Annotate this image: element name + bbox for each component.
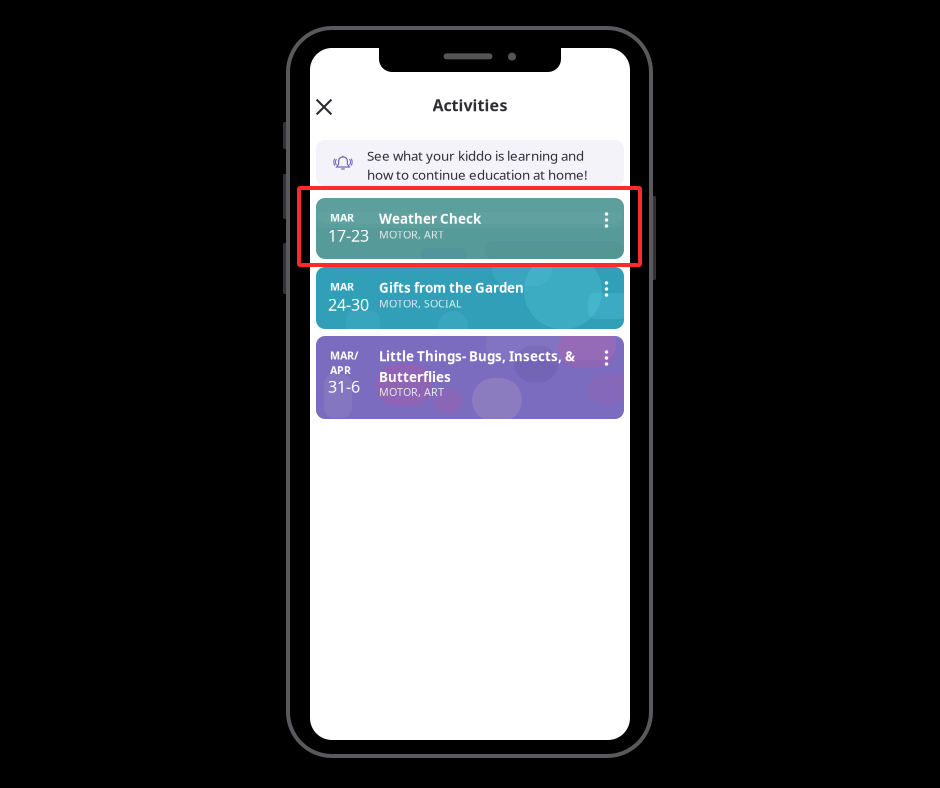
staticText: Weather Check <box>379 210 481 227</box>
staticText: MOTOR, SOCIAL <box>379 296 462 310</box>
staticText: Gifts from the Garden <box>379 279 524 296</box>
staticText: MOTOR, ART <box>379 385 444 399</box>
staticText: See what your kiddo is learning and <box>367 147 584 164</box>
staticText: Little Things- Bugs, Insects, & <box>379 347 575 365</box>
staticText: MOTOR, ART <box>379 227 444 241</box>
staticText: 17-23 <box>328 225 369 246</box>
staticText: Butterflies <box>379 368 451 386</box>
button[interactable]: MAR <box>316 267 624 329</box>
staticText: MAR/ <box>330 348 358 362</box>
button[interactable]: MAR <box>316 198 624 259</box>
button[interactable]: Close <box>304 87 344 127</box>
button[interactable]: More options for Weather Check <box>316 198 346 228</box>
button[interactable]: More options for Little Things- Bugs, In… <box>316 336 346 366</box>
button[interactable]: More options for Gifts from the Garden <box>316 267 346 297</box>
staticText: 31-6 <box>328 376 360 397</box>
staticText: APR <box>330 363 351 377</box>
staticText: 24-30 <box>328 294 369 315</box>
staticText: Activities <box>432 94 507 116</box>
button[interactable]: MAR/ <box>316 336 624 419</box>
staticText: MAR <box>330 210 354 225</box>
staticText: how to continue education at home! <box>367 166 588 183</box>
staticText: MAR <box>330 279 354 294</box>
